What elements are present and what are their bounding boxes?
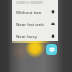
staticText: Without two locations (16, 9, 51, 15)
button[interactable]: Without two locations (12, 6, 58, 18)
staticText: SEARCH NEARBY (16, 1, 44, 5)
button[interactable]: Near busy stylers (12, 30, 58, 42)
button[interactable]: Near hot web stylers (12, 18, 58, 30)
staticText: Near busy stylers (16, 33, 51, 39)
button[interactable]: New message (46, 44, 57, 55)
staticText: Near hot web stylers (16, 21, 51, 27)
